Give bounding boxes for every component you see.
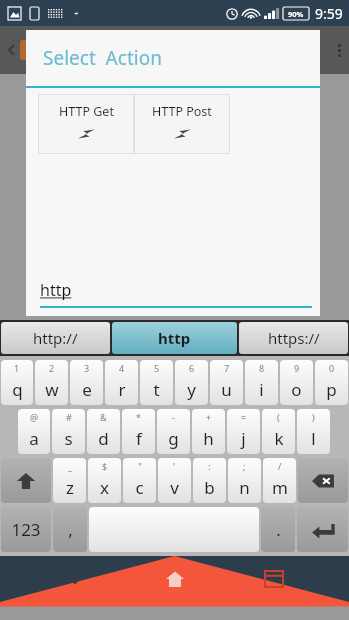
button[interactable]: http xyxy=(112,322,237,354)
staticText: ' xyxy=(173,460,176,472)
staticText: http xyxy=(158,328,191,348)
button[interactable]: HTTP Get xyxy=(38,94,134,154)
staticText: s xyxy=(64,427,73,450)
button[interactable]: Enter xyxy=(297,507,348,552)
staticText: 2 xyxy=(49,362,55,374)
staticText: HTTP Get xyxy=(59,103,114,120)
button[interactable]: = xyxy=(227,409,260,454)
staticText: . xyxy=(276,518,281,541)
staticText: ( xyxy=(277,411,280,423)
button[interactable]: 6 xyxy=(175,360,208,405)
staticText: 8 xyxy=(259,362,265,374)
staticText: o xyxy=(291,378,302,401)
button[interactable]: , xyxy=(53,507,87,552)
staticText: / xyxy=(278,460,282,472)
staticText: - xyxy=(172,411,175,423)
button[interactable]: 0 xyxy=(315,360,348,405)
button[interactable]: / xyxy=(263,458,296,503)
staticText: m xyxy=(272,476,288,499)
staticText: * xyxy=(136,411,141,423)
staticText: # xyxy=(66,411,72,423)
button[interactable]: https:// xyxy=(239,322,348,354)
button[interactable]: & xyxy=(87,409,120,454)
button[interactable]: 5 xyxy=(140,360,173,405)
staticText: 123 xyxy=(11,518,41,541)
staticText: l xyxy=(311,427,316,450)
staticText: 7 xyxy=(224,362,230,374)
staticText: i xyxy=(259,378,264,401)
staticText: y xyxy=(187,378,196,401)
staticText: + xyxy=(206,411,212,423)
button[interactable]: 9 xyxy=(280,360,313,405)
staticText: ; xyxy=(243,460,246,472)
staticText: d xyxy=(98,427,109,450)
staticText: $ xyxy=(102,460,108,472)
staticText: 90% xyxy=(288,9,304,19)
button[interactable]: . xyxy=(261,507,295,552)
staticText: f xyxy=(136,427,142,450)
staticText: 3 xyxy=(84,362,90,374)
button[interactable]: 3 xyxy=(70,360,103,405)
button[interactable]: + xyxy=(192,409,225,454)
staticText: x xyxy=(100,476,109,499)
button[interactable]: - xyxy=(157,409,190,454)
staticText: b xyxy=(204,476,215,499)
button[interactable]: @ xyxy=(18,409,50,454)
staticText: 9:59 xyxy=(315,4,343,23)
staticText: 4 xyxy=(119,362,125,374)
staticText: j xyxy=(241,427,246,450)
staticText: , xyxy=(68,518,73,541)
staticText: http:// xyxy=(33,328,78,348)
staticText: Select Action xyxy=(43,45,162,71)
staticText: p xyxy=(326,378,337,401)
button[interactable]: ( xyxy=(262,409,295,454)
button[interactable]: HTTP Post xyxy=(134,94,230,154)
staticText: http xyxy=(40,279,72,301)
staticText: g xyxy=(168,427,179,450)
staticText: q xyxy=(12,378,23,401)
staticText: 0 xyxy=(329,362,335,374)
staticText: r xyxy=(118,378,126,401)
button[interactable]: ) xyxy=(297,409,330,454)
staticText: c xyxy=(135,476,144,499)
button[interactable]: 4 xyxy=(105,360,138,405)
staticText: 5 xyxy=(154,362,160,374)
staticText: 9 xyxy=(294,362,300,374)
button[interactable]: Backspace xyxy=(298,458,348,503)
staticText: https:// xyxy=(268,328,320,348)
staticText: v xyxy=(170,476,179,499)
button[interactable]: ' xyxy=(158,458,191,503)
button[interactable]: 8 xyxy=(245,360,278,405)
button[interactable]: http:// xyxy=(1,322,110,354)
staticText: : xyxy=(208,460,211,472)
staticText: h xyxy=(203,427,214,450)
button[interactable]: $ xyxy=(88,458,121,503)
staticText: w xyxy=(45,378,59,401)
staticText: n xyxy=(239,476,250,499)
button[interactable]: Home xyxy=(151,556,199,602)
staticText: = xyxy=(241,411,247,423)
button[interactable]: " xyxy=(123,458,156,503)
button[interactable]: ; xyxy=(228,458,261,503)
button[interactable]: * xyxy=(122,409,155,454)
button[interactable]: 2 xyxy=(35,360,68,405)
button[interactable] xyxy=(89,507,259,552)
button[interactable]: 7 xyxy=(210,360,243,405)
staticText: a xyxy=(29,427,39,450)
button[interactable]: : xyxy=(193,458,226,503)
staticText: 6 xyxy=(189,362,195,374)
button[interactable]: # xyxy=(52,409,85,454)
button[interactable]: 123 xyxy=(1,507,51,552)
button[interactable]: Shift xyxy=(1,458,51,503)
staticText: ) xyxy=(312,411,315,423)
staticText: k xyxy=(274,427,284,450)
staticText: 1 xyxy=(14,362,20,374)
staticText: t xyxy=(153,378,160,401)
button[interactable]: Back xyxy=(51,556,99,602)
button[interactable]: 1 xyxy=(1,360,33,405)
staticText: u xyxy=(221,378,232,401)
staticText: e xyxy=(82,378,92,401)
button[interactable]: _ xyxy=(53,458,86,503)
staticText: z xyxy=(66,476,74,499)
button[interactable]: Recents xyxy=(250,556,298,602)
